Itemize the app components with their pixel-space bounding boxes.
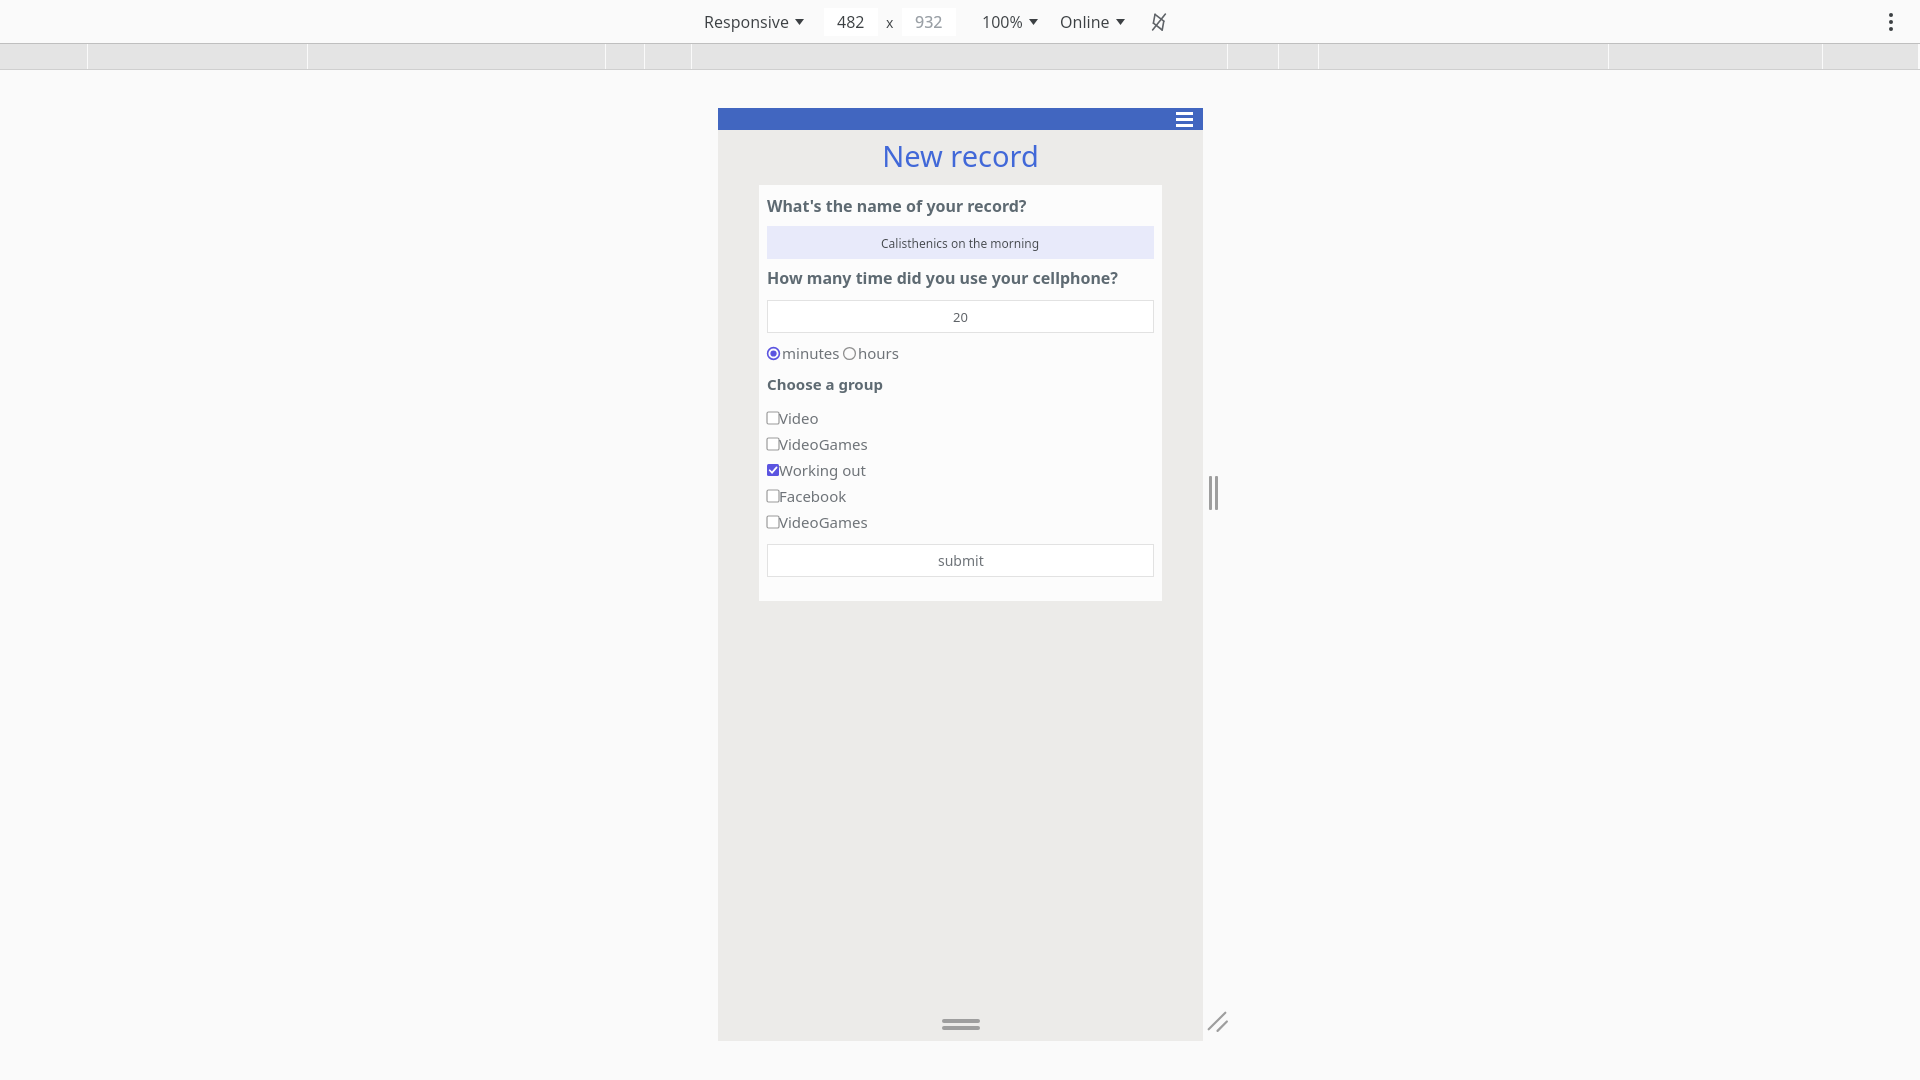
button[interactable]: Video — [767, 405, 1154, 431]
button[interactable]: Working out — [767, 457, 1154, 483]
staticText: 932 — [915, 11, 943, 33]
button[interactable]: Calisthenics on the morning — [767, 226, 1154, 259]
button[interactable]: submit — [767, 544, 1154, 577]
staticText: Facebook — [779, 486, 847, 506]
staticText: Choose a group — [767, 374, 883, 394]
button[interactable]: Online — [1056, 7, 1129, 37]
button[interactable]: 100% — [978, 7, 1042, 37]
button[interactable]: 932 — [902, 8, 956, 36]
button[interactable]: VideoGames — [767, 431, 1154, 457]
staticText: x — [886, 13, 894, 32]
button[interactable]: hours — [843, 341, 902, 365]
button[interactable]: minutes — [767, 341, 843, 365]
button[interactable]: More options — [1876, 7, 1906, 37]
staticText: 100% — [982, 11, 1023, 33]
button[interactable]: 482 — [824, 8, 878, 36]
staticText: Calisthenics on the morning — [881, 235, 1040, 251]
staticText: How many time did you use your cellphone… — [767, 267, 1118, 289]
button[interactable]: 20 — [767, 300, 1154, 333]
button[interactable]: Resize width — [1207, 470, 1219, 516]
button[interactable]: Resize height — [940, 1016, 982, 1032]
button[interactable]: Responsive — [700, 7, 808, 37]
staticText: minutes — [782, 343, 840, 363]
button[interactable]: Resize — [1204, 1008, 1230, 1034]
button[interactable]: Menu — [1173, 108, 1195, 130]
staticText: 482 — [837, 11, 865, 33]
staticText: 20 — [953, 308, 968, 326]
staticText: Working out — [779, 460, 866, 480]
button[interactable]: Facebook — [767, 483, 1154, 509]
button[interactable]: Network throttling — [1145, 8, 1173, 36]
staticText: hours — [858, 343, 899, 363]
staticText: VideoGames — [779, 512, 868, 532]
staticText: Video — [779, 408, 819, 428]
staticText: What's the name of your record? — [767, 195, 1027, 217]
staticText: New record — [718, 136, 1203, 175]
staticText: VideoGames — [779, 434, 868, 454]
button[interactable]: VideoGames — [767, 509, 1154, 535]
staticText: submit — [938, 551, 984, 570]
staticText: Online — [1060, 11, 1110, 33]
staticText: Responsive — [704, 11, 789, 33]
